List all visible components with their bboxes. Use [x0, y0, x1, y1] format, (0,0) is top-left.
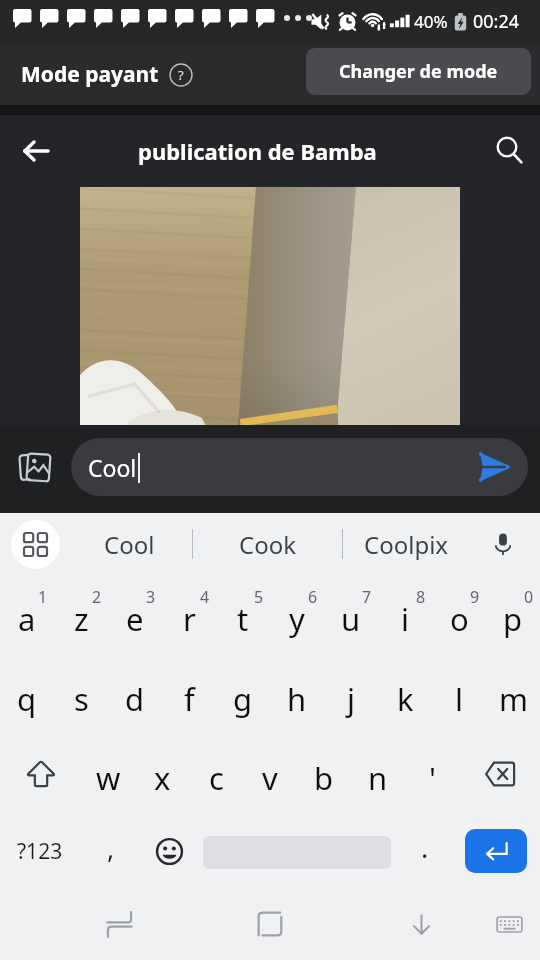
- button[interactable]: b: [297, 735, 351, 813]
- staticText: o: [450, 598, 469, 640]
- staticText: Coolpix: [364, 528, 449, 561]
- button[interactable]: Envoyer: [472, 445, 516, 489]
- staticText: .: [421, 829, 429, 866]
- staticText: p: [503, 598, 523, 640]
- staticText: n: [368, 757, 388, 799]
- button[interactable]: ?123: [0, 813, 82, 890]
- button[interactable]: d: [108, 655, 162, 735]
- button[interactable]: n: [351, 735, 405, 813]
- button[interactable]: e: [108, 575, 162, 655]
- staticText: 40%: [414, 10, 448, 33]
- button[interactable]: Rechercher: [488, 129, 532, 173]
- button[interactable]: Entrée: [465, 829, 527, 873]
- staticText: g: [233, 678, 253, 720]
- button[interactable]: Cook: [208, 519, 328, 569]
- staticText: 0: [524, 586, 534, 608]
- staticText: e: [126, 598, 144, 640]
- button[interactable]: p: [486, 575, 540, 655]
- button[interactable]: Cool: [71, 438, 528, 496]
- button[interactable]: Aide: [169, 63, 193, 87]
- staticText: w: [96, 757, 121, 799]
- button[interactable]: Cool: [69, 519, 189, 569]
- button[interactable]: r: [162, 575, 216, 655]
- button[interactable]: w: [81, 735, 135, 813]
- button[interactable]: ,: [82, 813, 140, 890]
- button[interactable]: q: [0, 655, 54, 735]
- button[interactable]: ': [405, 735, 459, 813]
- staticText: 2: [92, 586, 102, 608]
- staticText: a: [18, 598, 36, 640]
- button[interactable]: a: [0, 575, 54, 655]
- button[interactable]: Masquer le clavier: [397, 900, 445, 948]
- staticText: f: [184, 678, 195, 720]
- staticText: Cool: [88, 452, 137, 483]
- staticText: v: [262, 757, 278, 799]
- button[interactable]: x: [135, 735, 189, 813]
- button[interactable]: Supprimer: [459, 735, 540, 813]
- staticText: Mode payant: [21, 60, 159, 89]
- staticText: z: [74, 598, 89, 640]
- staticText: b: [314, 757, 334, 799]
- button[interactable]: Plus d'options: [11, 520, 60, 569]
- staticText: publication de Bamba: [138, 136, 377, 166]
- button[interactable]: k: [378, 655, 432, 735]
- button[interactable]: s: [54, 655, 108, 735]
- staticText: t: [237, 598, 249, 640]
- staticText: ?: [178, 66, 184, 84]
- staticText: 5: [254, 586, 264, 608]
- button[interactable]: Accueil: [246, 900, 294, 948]
- button[interactable]: Changer de clavier: [485, 900, 533, 948]
- button[interactable]: y: [270, 575, 324, 655]
- staticText: ': [429, 757, 436, 799]
- button[interactable]: g: [216, 655, 270, 735]
- button[interactable]: c: [189, 735, 243, 813]
- button[interactable]: Changer de mode: [306, 48, 531, 95]
- button[interactable]: Saisie vocale: [482, 523, 524, 565]
- staticText: Cool: [104, 528, 155, 561]
- staticText: k: [397, 678, 414, 720]
- button[interactable]: o: [432, 575, 486, 655]
- staticText: ?123: [17, 837, 63, 866]
- button[interactable]: j: [324, 655, 378, 735]
- staticText: Changer de mode: [339, 59, 498, 84]
- button[interactable]: f: [162, 655, 216, 735]
- staticText: h: [287, 678, 307, 720]
- staticText: 1: [38, 586, 48, 608]
- button[interactable]: l: [432, 655, 486, 735]
- button[interactable]: Retour: [14, 129, 58, 173]
- staticText: s: [74, 678, 89, 720]
- staticText: d: [125, 678, 145, 720]
- staticText: 6: [308, 586, 318, 608]
- button[interactable]: Galerie: [12, 443, 60, 491]
- staticText: m: [499, 678, 528, 720]
- staticText: c: [209, 757, 224, 799]
- staticText: y: [289, 598, 305, 640]
- button[interactable]: Récents: [95, 900, 143, 948]
- button[interactable]: Coolpix: [346, 519, 466, 569]
- button[interactable]: u: [324, 575, 378, 655]
- staticText: 3: [146, 586, 156, 608]
- staticText: r: [183, 598, 196, 640]
- staticText: 00:24: [473, 9, 520, 34]
- staticText: 8: [416, 586, 426, 608]
- staticText: 4: [200, 586, 210, 608]
- button[interactable]: .: [396, 813, 454, 890]
- staticText: 9: [470, 586, 480, 608]
- button[interactable]: h: [270, 655, 324, 735]
- staticText: j: [347, 678, 355, 720]
- staticText: l: [455, 678, 463, 720]
- button[interactable]: v: [243, 735, 297, 813]
- staticText: Cook: [239, 528, 297, 561]
- staticText: u: [341, 598, 361, 640]
- staticText: x: [154, 757, 171, 799]
- button[interactable]: m: [486, 655, 540, 735]
- button[interactable]: Emoji: [140, 813, 198, 890]
- staticText: i: [401, 598, 409, 640]
- staticText: ,: [107, 829, 115, 866]
- button[interactable]: t: [216, 575, 270, 655]
- button[interactable]: z: [54, 575, 108, 655]
- button[interactable]: i: [378, 575, 432, 655]
- staticText: q: [17, 678, 37, 720]
- button[interactable]: Majuscule: [0, 735, 81, 813]
